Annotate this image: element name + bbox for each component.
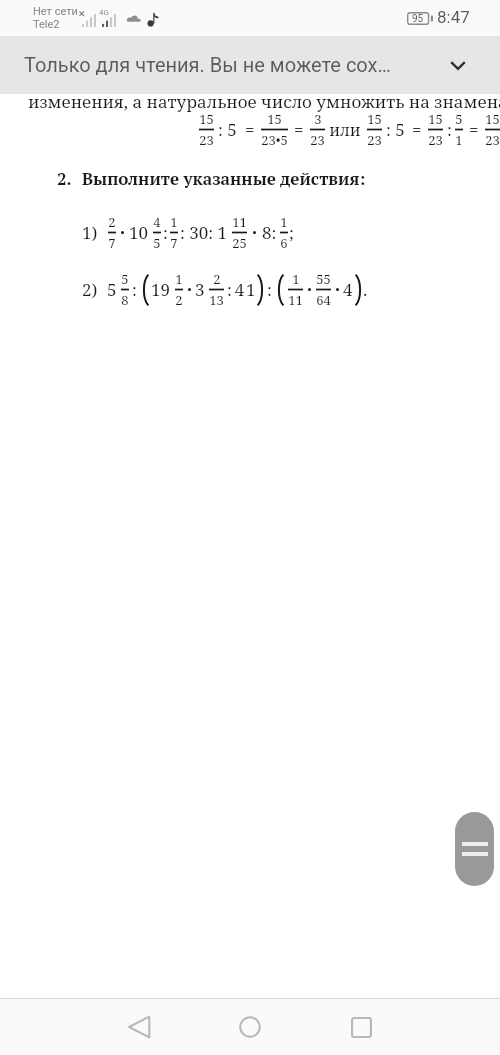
- staticText: 5: [455, 110, 463, 128]
- staticText: 8:47: [437, 7, 470, 27]
- staticText: 15: [428, 110, 443, 128]
- staticText: 3: [314, 110, 322, 128]
- staticText: : 5: [218, 118, 237, 141]
- staticText: 7: [170, 234, 178, 252]
- staticText: 25: [232, 234, 247, 252]
- staticText: 23: [199, 131, 214, 149]
- staticText: Только для чтения. Вы не можете сох…: [24, 53, 391, 76]
- staticText: 1: [175, 270, 183, 288]
- staticText: 1: [280, 213, 288, 231]
- staticText: 15: [267, 110, 282, 128]
- staticText: 1): [82, 221, 98, 244]
- staticText: ✕: [78, 9, 86, 19]
- staticText: 23•5: [261, 131, 288, 149]
- staticText: 2.: [57, 167, 72, 190]
- staticText: 13: [209, 291, 224, 309]
- staticText: 23: [428, 131, 443, 149]
- staticText: 5: [153, 234, 161, 252]
- staticText: 11: [232, 213, 247, 231]
- staticText: 5: [121, 270, 129, 288]
- button[interactable]: Home: [220, 999, 280, 1055]
- staticText: :: [267, 278, 272, 301]
- staticText: : 4: [227, 278, 245, 301]
- staticText: 15: [199, 110, 214, 128]
- staticText: :: [132, 278, 137, 301]
- staticText: Выполните указанные действия:: [82, 167, 366, 190]
- staticText: 1: [292, 270, 300, 288]
- staticText: 8: [121, 291, 129, 309]
- staticText: =: [469, 118, 479, 141]
- staticText: 4G: [99, 8, 109, 17]
- button[interactable]: Только для чтения. Вы не можете сох…: [0, 36, 500, 94]
- staticText: Нет сети: [33, 5, 78, 18]
- staticText: 15: [367, 110, 382, 128]
- staticText: 64: [316, 291, 331, 309]
- staticText: 1: [170, 213, 178, 231]
- staticText: 5: [107, 278, 117, 301]
- staticText: :: [163, 221, 168, 244]
- staticText: =: [294, 118, 304, 141]
- staticText: 2: [108, 213, 116, 231]
- staticText: 8:: [262, 221, 277, 244]
- staticText: или: [325, 119, 365, 141]
- staticText: =: [412, 118, 422, 141]
- staticText: 23: [367, 131, 382, 149]
- staticText: 19: [151, 278, 171, 301]
- staticText: 4: [153, 213, 161, 231]
- staticText: 7: [108, 234, 116, 252]
- staticText: 2: [213, 270, 221, 288]
- staticText: 23: [485, 131, 500, 149]
- staticText: .: [363, 278, 368, 301]
- staticText: Tele2: [33, 18, 60, 31]
- staticText: :: [447, 118, 452, 141]
- staticText: 4: [343, 278, 353, 301]
- staticText: 3: [195, 278, 205, 301]
- button[interactable]: Recent apps: [331, 999, 391, 1055]
- staticText: ;: [289, 221, 294, 244]
- staticText: 95: [412, 13, 424, 25]
- staticText: 2): [82, 278, 98, 301]
- staticText: 15: [485, 110, 500, 128]
- staticText: =: [245, 118, 255, 141]
- staticText: 1: [455, 131, 463, 149]
- staticText: 11: [288, 291, 303, 309]
- staticText: : 5: [386, 118, 405, 141]
- staticText: 55: [316, 270, 331, 288]
- staticText: 2: [175, 291, 183, 309]
- staticText: 1: [246, 278, 256, 301]
- other: Expand banner: [439, 46, 477, 84]
- button[interactable]: Back: [109, 999, 169, 1055]
- staticText: 10: [129, 221, 149, 244]
- staticText: 23: [310, 131, 325, 149]
- staticText: 6: [280, 234, 288, 252]
- staticText: : 30: 1: [180, 221, 228, 244]
- button[interactable]: Scroll handle: [455, 812, 494, 886]
- staticText: изменения, а натуральное число умножить …: [28, 90, 500, 113]
